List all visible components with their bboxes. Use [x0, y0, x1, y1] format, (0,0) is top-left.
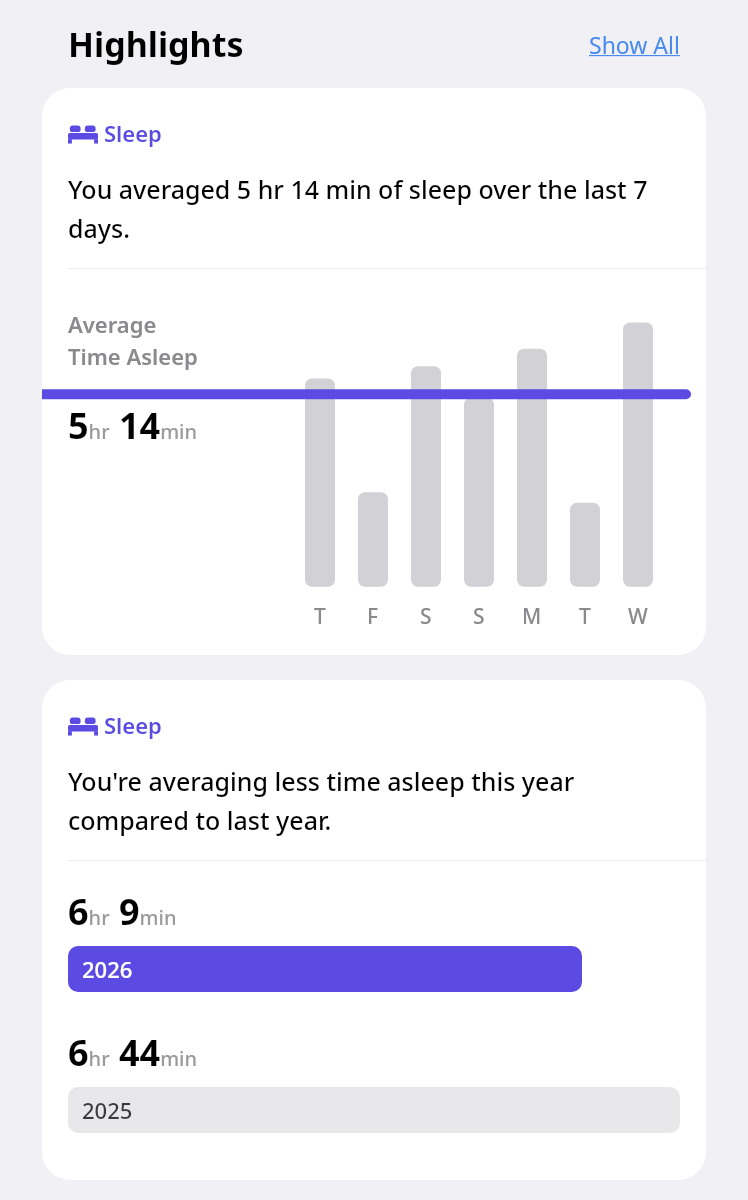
staticText: S: [473, 602, 485, 631]
button[interactable]: 2026: [68, 946, 680, 992]
staticText: 6hr 44min: [68, 1028, 198, 1077]
staticText: W: [628, 602, 648, 631]
staticText: 2025: [82, 1095, 133, 1125]
staticText: T: [579, 602, 591, 631]
staticText: F: [367, 602, 379, 631]
staticText: Average: [68, 309, 157, 339]
other: Sleep: [68, 714, 98, 736]
staticText: Show All: [589, 29, 680, 60]
other: Sleep: [68, 122, 98, 144]
staticText: S: [420, 602, 432, 631]
staticText: Sleep: [104, 118, 162, 148]
staticText: 5hr 14min: [68, 401, 198, 450]
staticText: Highlights: [68, 21, 244, 67]
button[interactable]: Sleep: [68, 710, 162, 740]
staticText: You averaged 5 hr 14 min of sleep over t…: [68, 172, 680, 246]
button[interactable]: Sleep: [42, 88, 706, 655]
staticText: M: [522, 602, 542, 631]
button[interactable]: Sleep: [68, 118, 162, 148]
staticText: 2026: [82, 954, 133, 984]
staticText: You're averaging less time asleep this y…: [68, 764, 680, 838]
staticText: Sleep: [104, 710, 162, 740]
button[interactable]: Show All: [583, 23, 686, 66]
button[interactable]: Sleep: [42, 680, 706, 1180]
button[interactable]: 2025: [68, 1087, 680, 1133]
staticText: Time Asleep: [68, 341, 198, 371]
staticText: 6hr 9min: [68, 887, 177, 936]
staticText: T: [314, 602, 326, 631]
